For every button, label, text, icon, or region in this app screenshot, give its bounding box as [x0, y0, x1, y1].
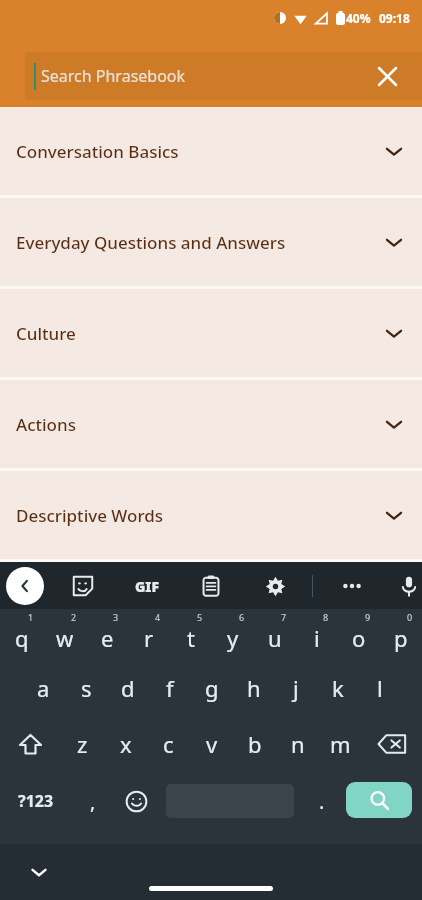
button[interactable]: Everyday Questions and Answers	[0, 198, 422, 286]
button[interactable]: n	[276, 715, 319, 773]
button[interactable]: ,	[72, 773, 114, 829]
staticText: u	[268, 623, 282, 653]
staticText: e	[101, 623, 114, 653]
button[interactable]: g	[191, 661, 233, 715]
button[interactable]: m	[319, 715, 362, 773]
button[interactable]: GIF	[130, 569, 164, 603]
button[interactable]: 5	[170, 609, 212, 661]
staticText: 6	[239, 611, 245, 623]
staticText: g	[205, 673, 219, 703]
button[interactable]: Actions	[0, 380, 422, 468]
staticText: Conversation Basics	[16, 140, 179, 163]
staticText: c	[163, 729, 174, 759]
button[interactable]: k	[317, 661, 359, 715]
staticText: l	[377, 673, 383, 703]
button[interactable]: ?123	[0, 773, 72, 829]
staticText: f	[166, 673, 174, 703]
staticText: 1	[28, 611, 34, 623]
button[interactable]: v	[190, 715, 233, 773]
staticText: i	[314, 623, 320, 653]
staticText: Everyday Questions and Answers	[16, 231, 286, 254]
button[interactable]: 4	[128, 609, 170, 661]
staticText: t	[187, 623, 195, 653]
staticText: Actions	[16, 413, 76, 436]
button[interactable]: 1	[0, 609, 43, 661]
staticText: j	[293, 673, 299, 703]
staticText: z	[77, 729, 88, 759]
button[interactable]: 8	[296, 609, 338, 661]
staticText: s	[81, 673, 92, 703]
staticText: k	[332, 673, 344, 703]
button[interactable]: c	[147, 715, 190, 773]
button[interactable]: d	[107, 661, 149, 715]
staticText: 8	[323, 611, 329, 623]
button[interactable]: Voice input	[395, 569, 422, 603]
staticText: 4	[155, 611, 161, 623]
button[interactable]: Search Phrasebook	[25, 52, 422, 100]
staticText: y	[227, 623, 239, 653]
button[interactable]: h	[233, 661, 275, 715]
staticText: .	[319, 788, 325, 815]
staticText: w	[56, 623, 74, 653]
staticText: p	[394, 623, 408, 653]
staticText: a	[37, 673, 50, 703]
staticText: b	[248, 729, 262, 759]
button[interactable]: .	[302, 773, 342, 829]
button[interactable]: Emoji	[114, 773, 158, 829]
staticText: 2	[71, 611, 77, 623]
button[interactable]: s	[65, 661, 107, 715]
staticText: Search Phrasebook	[41, 65, 186, 87]
button[interactable]: 3	[86, 609, 128, 661]
button[interactable]: Shift	[0, 715, 61, 773]
staticText: 7	[281, 611, 287, 623]
staticText: 3	[113, 611, 119, 623]
staticText: ?123	[18, 790, 54, 812]
button[interactable]: Stickers	[66, 569, 100, 603]
button[interactable]: 6	[212, 609, 254, 661]
button[interactable]: f	[149, 661, 191, 715]
button[interactable]: l	[359, 661, 401, 715]
button[interactable]: Settings	[258, 569, 292, 603]
button[interactable]: Descriptive Words	[0, 471, 422, 559]
staticText: h	[247, 673, 261, 703]
staticText: ,	[90, 788, 96, 815]
button[interactable]: More options	[335, 569, 369, 603]
button[interactable]: 2	[43, 609, 86, 661]
button[interactable]: x	[104, 715, 147, 773]
staticText: r	[144, 623, 154, 653]
staticText: 9	[365, 611, 371, 623]
button[interactable]: Back	[6, 567, 44, 605]
button[interactable]: Clear search	[372, 61, 402, 91]
button[interactable]: 0	[380, 609, 422, 661]
staticText: 40%	[346, 10, 371, 26]
staticText: q	[15, 623, 29, 653]
staticText: GIF	[135, 577, 160, 596]
button[interactable]: Clipboard	[194, 569, 228, 603]
button[interactable]: z	[61, 715, 104, 773]
staticText: m	[330, 729, 351, 759]
staticText: v	[206, 729, 218, 759]
button[interactable]: Hide keyboard	[22, 855, 56, 889]
staticText: Culture	[16, 322, 76, 345]
button[interactable]: 7	[254, 609, 296, 661]
button[interactable]: b	[233, 715, 276, 773]
button[interactable]: Conversation Basics	[0, 107, 422, 195]
staticText: o	[352, 623, 366, 653]
staticText: 09:18	[379, 10, 410, 26]
staticText: Descriptive Words	[16, 504, 164, 527]
staticText: x	[120, 729, 132, 759]
button[interactable]: Delete	[362, 715, 422, 773]
button[interactable]: 9	[338, 609, 380, 661]
button[interactable]: a	[22, 661, 65, 715]
staticText: 0	[407, 611, 413, 623]
staticText: n	[291, 729, 305, 759]
staticText: d	[121, 673, 135, 703]
button[interactable]: j	[275, 661, 317, 715]
staticText: 5	[197, 611, 203, 623]
button[interactable]: Search	[346, 782, 412, 818]
button[interactable]: Culture	[0, 289, 422, 377]
